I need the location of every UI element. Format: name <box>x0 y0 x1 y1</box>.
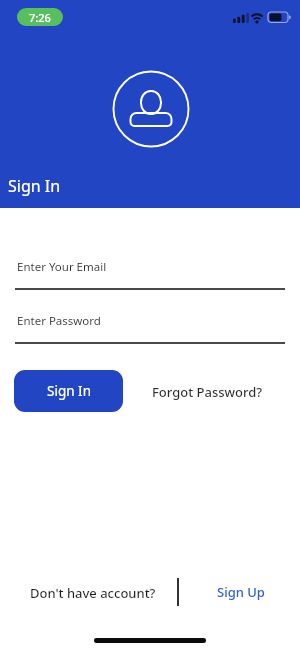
staticText: Don't have account? <box>30 584 156 602</box>
button[interactable]: Enter Your Email <box>15 259 285 290</box>
staticText: Sign In <box>47 382 91 400</box>
staticText: Forgot Password? <box>152 383 263 401</box>
staticText: 7:26 <box>29 10 51 25</box>
button[interactable]: Forgot Password? <box>147 380 267 404</box>
button[interactable]: Sign In <box>14 370 123 412</box>
button[interactable]: Enter Password <box>15 313 285 344</box>
staticText: Sign In <box>8 175 61 197</box>
staticText: Enter Password <box>17 313 101 329</box>
staticText: Sign Up <box>217 583 265 601</box>
staticText: Enter Your Email <box>17 259 107 275</box>
button[interactable]: Sign Up <box>206 578 276 606</box>
